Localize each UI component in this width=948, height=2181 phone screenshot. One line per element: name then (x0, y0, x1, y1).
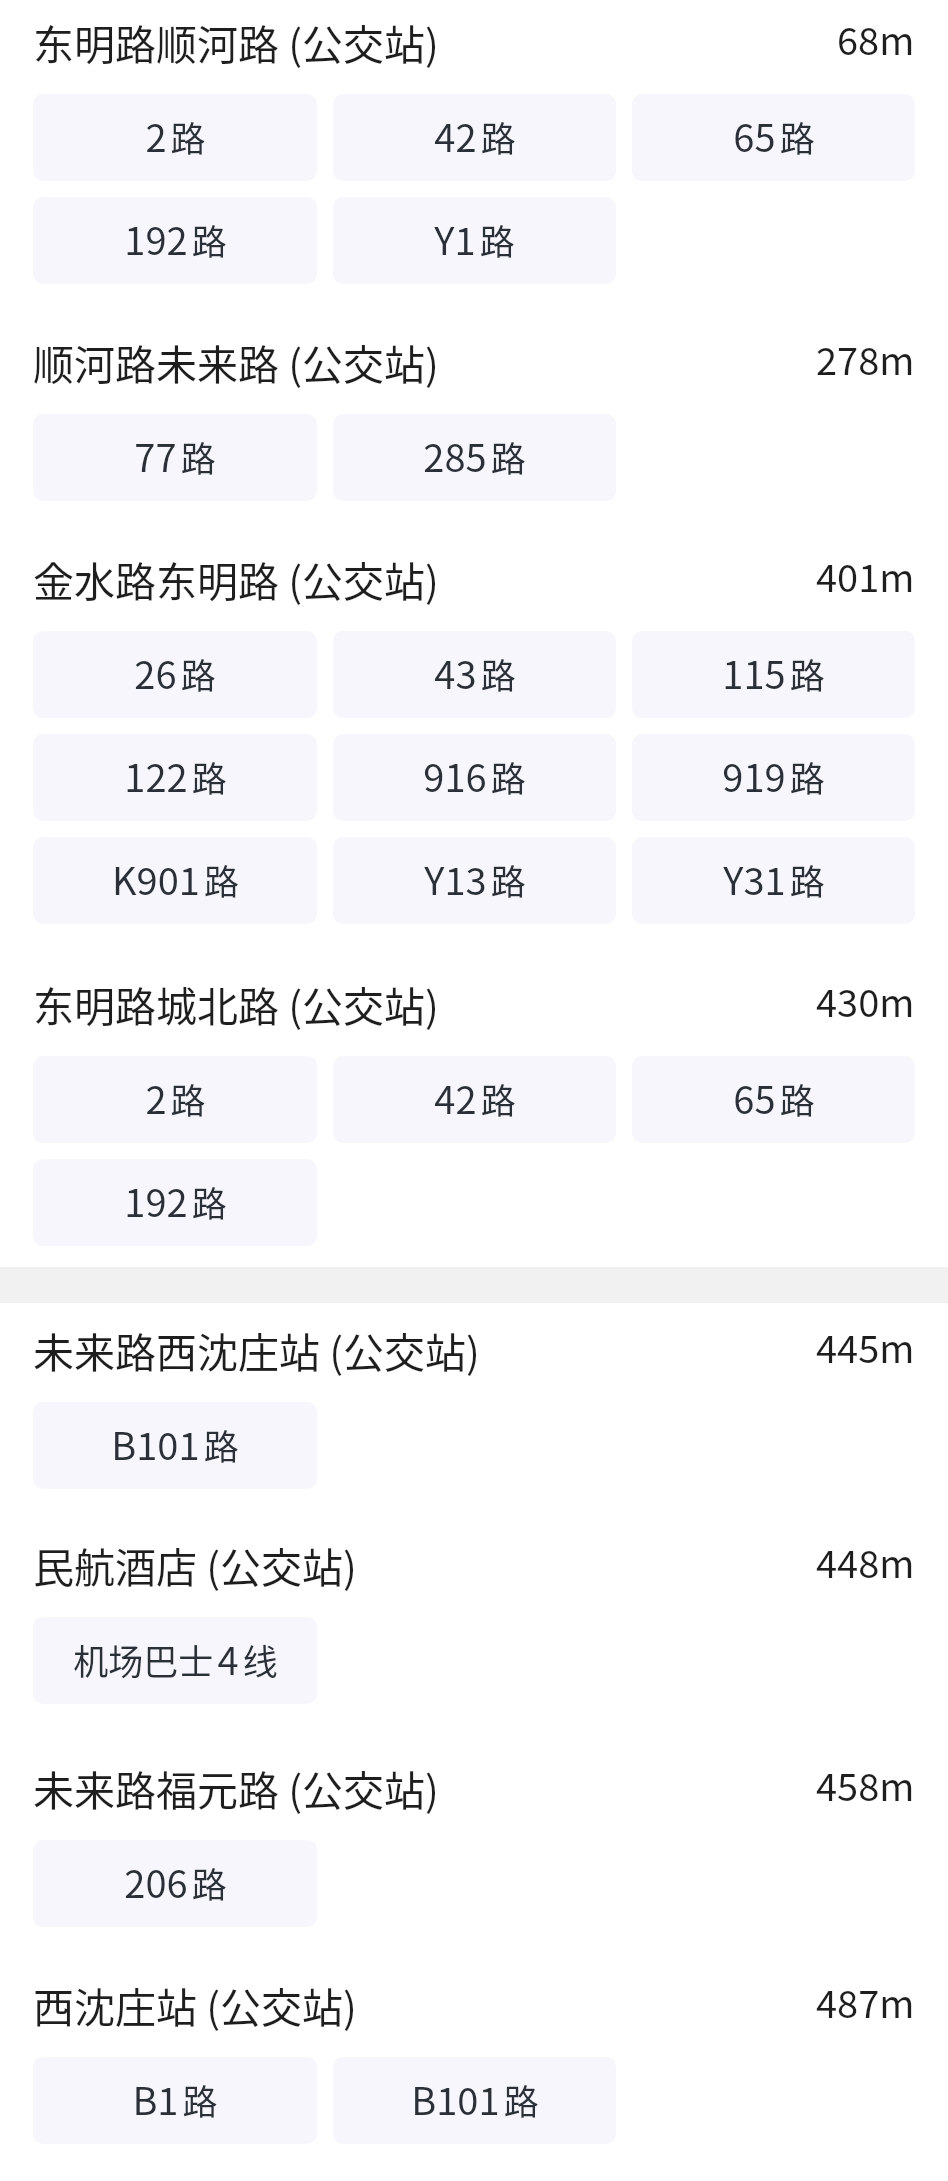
button[interactable]: K901 路 (33, 837, 317, 924)
staticText: Y31 路 (723, 851, 825, 906)
button[interactable]: 未来路福元路 (公交站) (0, 1756, 948, 1818)
staticText: 192 路 (124, 1173, 227, 1228)
button[interactable]: Y31 路 (632, 837, 915, 924)
staticText: 未来路福元路 (公交站) (33, 1758, 816, 1817)
staticText: 285 路 (423, 428, 526, 483)
staticText: 民航酒店 (公交站) (33, 1535, 816, 1594)
button[interactable]: 顺河路未来路 (公交站) (0, 330, 948, 392)
staticText: Y13 路 (424, 851, 526, 906)
button[interactable]: 122 路 (33, 734, 317, 821)
button[interactable]: Y13 路 (333, 837, 616, 924)
button[interactable]: 115 路 (632, 631, 915, 718)
staticText: 487m (816, 1974, 915, 2029)
staticText: 42 路 (434, 108, 516, 163)
staticText: K901 路 (112, 851, 239, 906)
button[interactable]: 42 路 (333, 1056, 616, 1143)
staticText: B101 路 (111, 1416, 239, 1471)
staticText: 401m (816, 548, 915, 603)
staticText: B101 路 (411, 2071, 539, 2126)
button[interactable]: 东明路城北路 (公交站) (0, 972, 948, 1034)
button[interactable]: 42 路 (333, 94, 616, 181)
button[interactable]: 2 路 (33, 94, 317, 181)
staticText: 206 路 (124, 1854, 227, 1909)
staticText: 43 路 (434, 645, 516, 700)
staticText: 2 路 (145, 108, 206, 163)
staticText: 金水路东明路 (公交站) (33, 549, 816, 608)
button[interactable]: 26 路 (33, 631, 317, 718)
button[interactable]: 192 路 (33, 197, 317, 284)
button[interactable]: 206 路 (33, 1840, 317, 1927)
staticText: 26 路 (134, 645, 216, 700)
staticText: 65 路 (733, 1070, 815, 1125)
staticText: 机场巴士 4 线 (73, 1631, 278, 1686)
button[interactable]: 919 路 (632, 734, 915, 821)
staticText: 458m (816, 1757, 915, 1812)
button[interactable]: B101 路 (333, 2057, 616, 2144)
staticText: 42 路 (434, 1070, 516, 1125)
button[interactable]: 916 路 (333, 734, 616, 821)
staticText: 445m (816, 1319, 915, 1374)
staticText: 919 路 (722, 748, 825, 803)
button[interactable]: 东明路顺河路 (公交站) (0, 10, 948, 72)
button[interactable]: 77 路 (33, 414, 317, 501)
staticText: 278m (816, 331, 915, 386)
staticText: 916 路 (423, 748, 526, 803)
button[interactable]: 金水路东明路 (公交站) (0, 547, 948, 609)
staticText: 顺河路未来路 (公交站) (33, 332, 816, 391)
button[interactable]: 西沈庄站 (公交站) (0, 1973, 948, 2035)
staticText: 东明路城北路 (公交站) (33, 974, 816, 1033)
staticText: 东明路顺河路 (公交站) (33, 12, 837, 71)
staticText: 77 路 (134, 428, 216, 483)
button[interactable]: 未来路西沈庄站 (公交站) (0, 1318, 948, 1380)
button[interactable]: Y1 路 (333, 197, 616, 284)
button[interactable]: B1 路 (33, 2057, 317, 2144)
button[interactable]: 43 路 (333, 631, 616, 718)
staticText: 西沈庄站 (公交站) (33, 1975, 816, 2034)
button[interactable]: 192 路 (33, 1159, 317, 1246)
staticText: 68m (837, 11, 915, 66)
staticText: 430m (816, 973, 915, 1028)
staticText: Y1 路 (434, 211, 515, 266)
button[interactable]: 65 路 (632, 94, 915, 181)
staticText: 192 路 (124, 211, 227, 266)
button[interactable]: 机场巴士 4 线 (33, 1617, 317, 1704)
button[interactable]: 285 路 (333, 414, 616, 501)
staticText: 65 路 (733, 108, 815, 163)
staticText: 未来路西沈庄站 (公交站) (33, 1320, 816, 1379)
button[interactable]: 65 路 (632, 1056, 915, 1143)
staticText: 2 路 (145, 1070, 206, 1125)
button[interactable]: 民航酒店 (公交站) (0, 1533, 948, 1595)
staticText: B1 路 (132, 2071, 218, 2126)
button[interactable]: B101 路 (33, 1402, 317, 1489)
button[interactable]: 2 路 (33, 1056, 317, 1143)
staticText: 115 路 (722, 645, 825, 700)
staticText: 448m (816, 1534, 915, 1589)
staticText: 122 路 (124, 748, 227, 803)
